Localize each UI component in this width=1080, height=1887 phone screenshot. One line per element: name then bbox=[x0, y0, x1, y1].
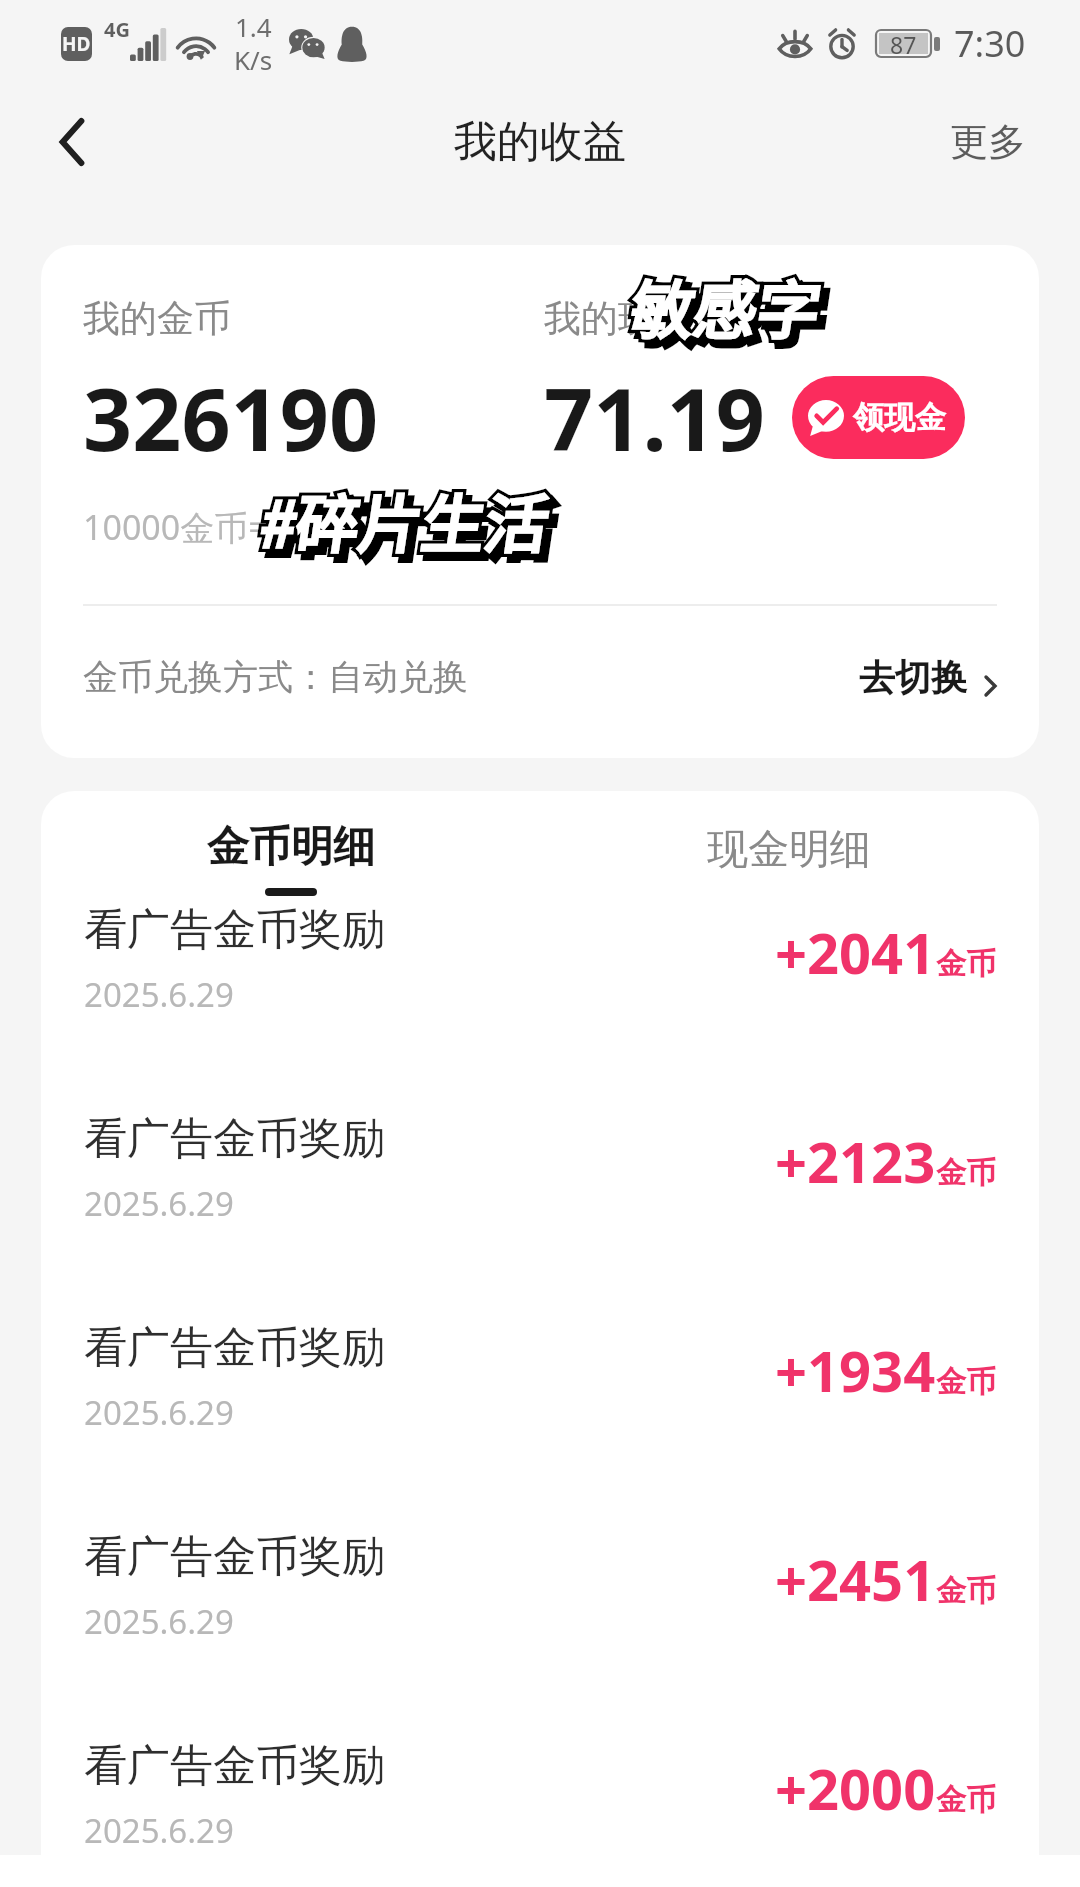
staticText: 金币 bbox=[936, 1572, 996, 1610]
button[interactable]: 看广告金币奖励 bbox=[41, 1112, 1039, 1321]
staticText: 我的现金 bbox=[544, 295, 692, 342]
staticText: 金币 bbox=[936, 1781, 996, 1819]
staticText: 看广告金币奖励 bbox=[84, 1739, 385, 1793]
button[interactable]: Back bbox=[32, 102, 112, 182]
staticText: 1.4 bbox=[235, 9, 272, 44]
staticText: 我的金币 bbox=[83, 295, 231, 342]
button[interactable]: 看广告金币奖励 bbox=[41, 1739, 1039, 1887]
button[interactable]: 去切换 bbox=[859, 655, 997, 700]
staticText: 2025.6.29 bbox=[84, 1599, 234, 1644]
button[interactable]: 现金明细 bbox=[707, 824, 871, 876]
staticText: +1934 bbox=[775, 1332, 936, 1408]
staticText: 我的收益 bbox=[454, 115, 626, 169]
staticText: 326190 bbox=[83, 359, 379, 476]
staticText: 金币 bbox=[936, 1154, 996, 1192]
button[interactable]: 看广告金币奖励 bbox=[41, 1321, 1039, 1530]
staticText: 金币 bbox=[936, 1363, 996, 1401]
staticText: 金币明细 bbox=[207, 821, 375, 874]
staticText: 看广告金币奖励 bbox=[84, 1112, 385, 1166]
staticText: 87 bbox=[890, 29, 917, 58]
staticText: 2025.6.29 bbox=[84, 972, 234, 1017]
staticText: 10000金币=1元 bbox=[83, 504, 322, 550]
staticText: 看广告金币奖励 bbox=[84, 1530, 385, 1584]
staticText: 4G bbox=[104, 16, 130, 43]
staticText: 领现金 bbox=[853, 398, 946, 437]
button[interactable]: 金币明细 bbox=[207, 791, 375, 896]
staticText: 金币 bbox=[936, 945, 996, 983]
staticText: 2025.6.29 bbox=[84, 1390, 234, 1435]
staticText: +2000 bbox=[775, 1750, 936, 1826]
staticText: 看广告金币奖励 bbox=[84, 1321, 385, 1375]
button[interactable]: 看广告金币奖励 bbox=[41, 1530, 1039, 1739]
staticText: +2451 bbox=[775, 1541, 936, 1617]
staticText: 71.19 bbox=[544, 359, 765, 476]
staticText: 去切换 bbox=[859, 655, 967, 700]
staticText: +2123 bbox=[775, 1123, 936, 1199]
staticText: 更多 bbox=[950, 118, 1026, 166]
staticText: 2025.6.29 bbox=[84, 1808, 234, 1853]
staticText: HD bbox=[62, 31, 91, 57]
staticText: 金币兑换方式：自动兑换 bbox=[83, 655, 468, 699]
staticText: +2041 bbox=[775, 914, 936, 990]
button[interactable]: 看广告金币奖励 bbox=[41, 903, 1039, 1112]
staticText: 7:30 bbox=[954, 19, 1026, 68]
staticText: K/s bbox=[234, 42, 273, 77]
staticText: 看广告金币奖励 bbox=[84, 903, 385, 957]
button[interactable]: 领现金 bbox=[792, 376, 965, 459]
button[interactable]: 更多 bbox=[938, 106, 1038, 178]
staticText: 2025.6.29 bbox=[84, 1181, 234, 1226]
